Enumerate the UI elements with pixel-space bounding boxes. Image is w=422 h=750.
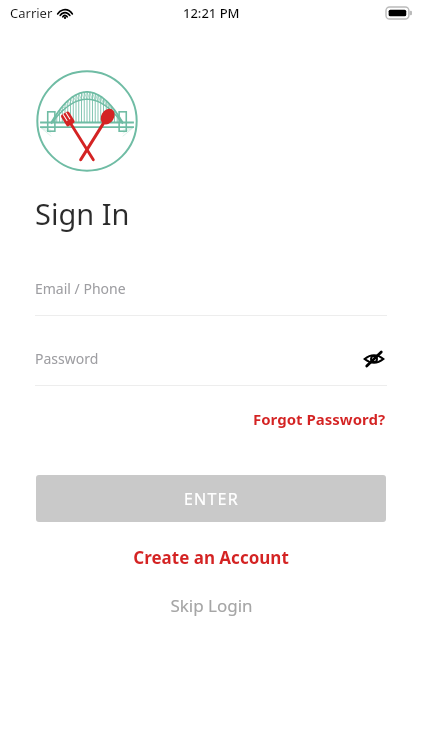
button[interactable]: Skip Login	[140, 588, 283, 623]
staticText: Carrier	[10, 4, 53, 22]
button[interactable]: Email / Phone	[35, 279, 387, 316]
staticText: Sign In	[35, 194, 130, 233]
button[interactable]: ENTER	[36, 475, 386, 522]
staticText: ENTER	[184, 488, 239, 510]
staticText: Password	[35, 349, 99, 368]
button[interactable]: Password	[35, 349, 387, 386]
staticText: Forgot Password?	[253, 409, 386, 429]
button[interactable]: Create an Account	[103, 540, 319, 575]
staticText: Create an Account	[133, 546, 289, 569]
button[interactable]: Show password	[361, 349, 387, 369]
staticText: Skip Login	[170, 594, 253, 617]
staticText: Email / Phone	[35, 279, 126, 298]
staticText: 12:21 PM	[183, 4, 240, 22]
button[interactable]: Forgot Password?	[217, 403, 422, 435]
